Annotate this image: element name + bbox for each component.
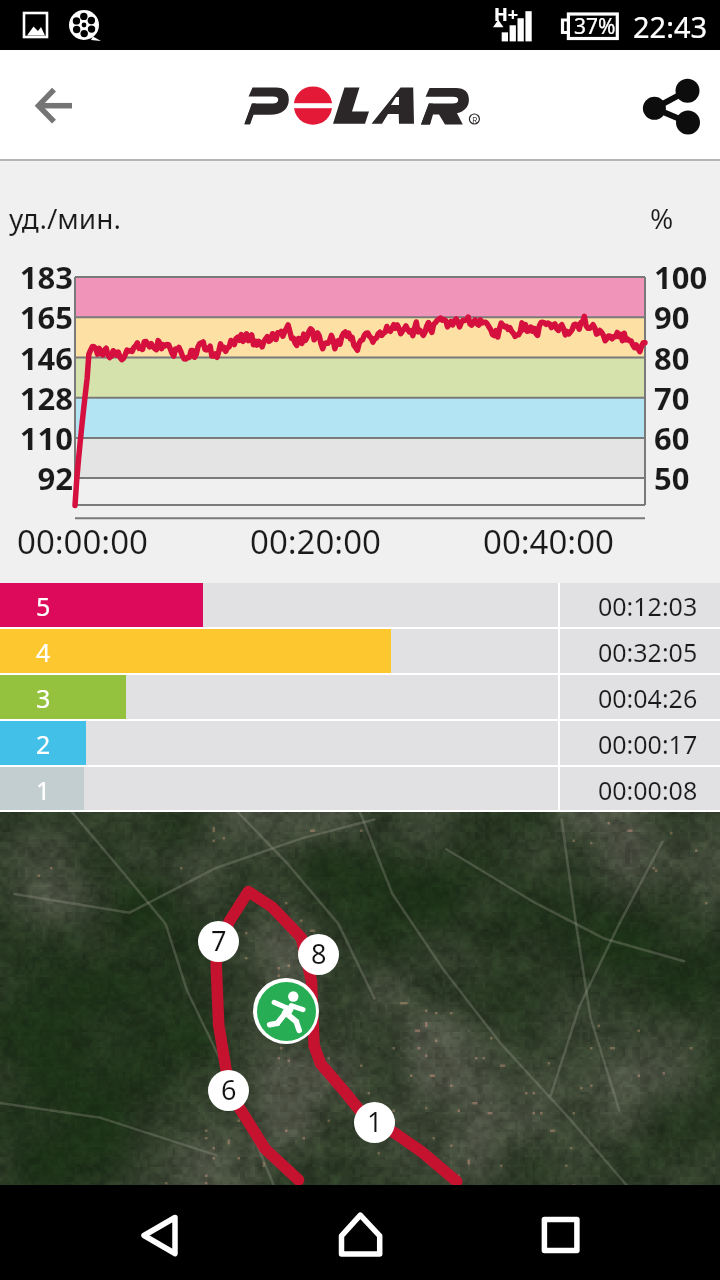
button[interactable]: 3 xyxy=(0,675,720,721)
button[interactable]: 7 xyxy=(198,921,239,962)
button[interactable]: 6 xyxy=(208,1070,249,1111)
staticText: 00:00:00 xyxy=(17,519,148,564)
staticText: 00:32:05 xyxy=(598,635,698,669)
staticText: 1 xyxy=(36,773,51,807)
button[interactable]: 1 xyxy=(354,1102,395,1143)
staticText: 80 xyxy=(654,337,690,379)
button[interactable]: Recent apps xyxy=(520,1199,600,1279)
staticText: 128 xyxy=(3,377,73,419)
staticText: 5 xyxy=(36,589,51,623)
staticText: уд./мин. xyxy=(9,199,121,237)
staticText: 146 xyxy=(3,337,73,379)
button[interactable]: 2 xyxy=(0,721,720,767)
staticText: 37% xyxy=(574,12,616,41)
staticText: 90 xyxy=(654,296,690,338)
button[interactable]: Back xyxy=(120,1199,200,1279)
staticText: 1 xyxy=(367,1103,383,1140)
button[interactable]: Running activity xyxy=(253,978,319,1044)
staticText: 110 xyxy=(3,417,73,459)
button[interactable]: 4 xyxy=(0,629,720,675)
staticText: 100 xyxy=(654,256,708,298)
staticText: 92 xyxy=(3,457,73,499)
staticText: 50 xyxy=(654,457,690,499)
button[interactable]: Share xyxy=(636,72,704,140)
staticText: H+ xyxy=(494,2,519,27)
staticText: 60 xyxy=(654,417,690,459)
staticText: 00:04:26 xyxy=(598,681,698,715)
staticText: 00:00:08 xyxy=(598,773,698,807)
staticText: 6 xyxy=(221,1071,237,1108)
staticText: 165 xyxy=(3,296,73,338)
staticText: 8 xyxy=(311,935,327,972)
staticText: R xyxy=(472,114,478,126)
staticText: % xyxy=(650,199,674,237)
button[interactable]: Home xyxy=(320,1199,400,1279)
staticText: 70 xyxy=(654,377,690,419)
button[interactable]: 1 xyxy=(0,767,720,812)
staticText: 2 xyxy=(36,727,51,761)
button[interactable]: Back xyxy=(16,72,84,140)
button[interactable]: 8 xyxy=(298,934,339,975)
button[interactable]: 5 xyxy=(0,583,720,629)
staticText: 22:43 xyxy=(633,7,708,46)
staticText: 00:40:00 xyxy=(483,519,614,564)
staticText: 00:12:03 xyxy=(598,589,698,623)
staticText: 4 xyxy=(36,635,51,669)
staticText: 183 xyxy=(3,256,73,298)
staticText: 3 xyxy=(36,681,51,715)
staticText: 7 xyxy=(211,922,227,959)
staticText: 00:20:00 xyxy=(250,519,381,564)
staticText: 00:00:17 xyxy=(598,727,698,761)
